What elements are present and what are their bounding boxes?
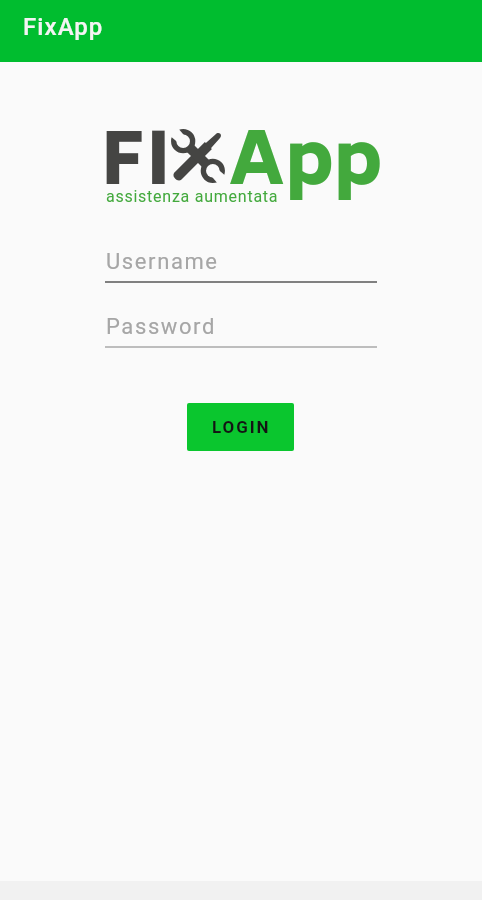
button[interactable]: Username xyxy=(105,251,377,283)
other: Tools xyxy=(172,130,224,182)
staticText: assistenza aumentata xyxy=(106,187,279,206)
button[interactable]: Password xyxy=(105,316,377,348)
button[interactable]: FixApp xyxy=(0,0,482,62)
staticText: FI xyxy=(101,106,173,230)
staticText: Password xyxy=(106,314,216,340)
staticText: Username xyxy=(106,249,219,275)
staticText: LOGIN xyxy=(212,417,271,437)
staticText: App xyxy=(228,106,383,230)
staticText: FixApp xyxy=(23,13,104,41)
button[interactable]: LOGIN xyxy=(187,403,294,451)
